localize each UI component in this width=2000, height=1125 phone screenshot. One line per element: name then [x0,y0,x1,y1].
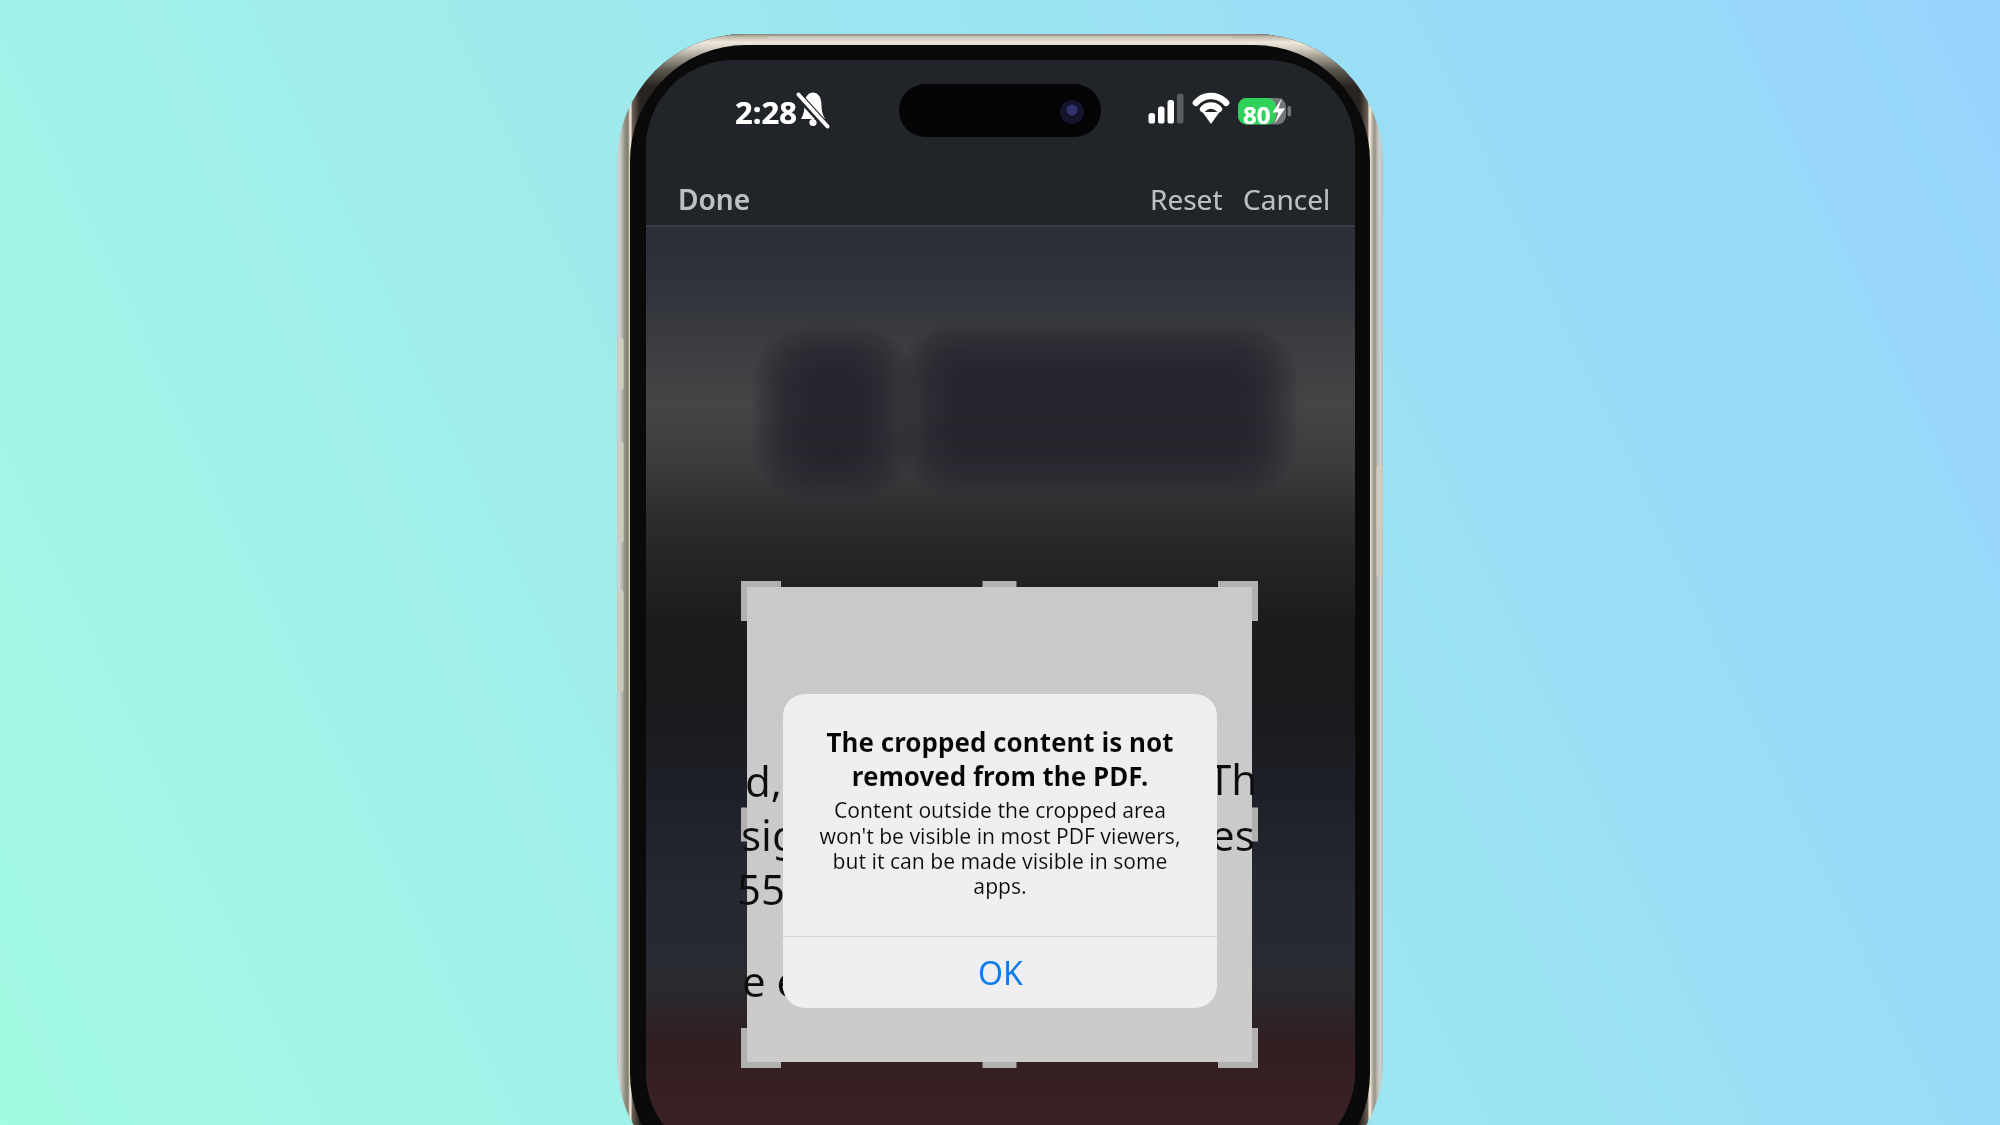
button[interactable]: OK [783,937,1217,1008]
staticText: The cropped content is not removed from … [783,724,1217,793]
staticText: Cancel [1243,180,1331,218]
staticText: d, [745,752,783,809]
staticText: sig [741,806,798,863]
button[interactable]: Reset [1140,172,1233,226]
staticText: 80 [1243,98,1271,131]
button[interactable]: Drag bottom right crop corner [1218,1028,1262,1072]
staticText: 55 [737,860,786,917]
button[interactable]: Drag top left crop corner [737,577,781,621]
staticText: e e [742,952,801,1009]
staticText: 2:28 [735,91,797,133]
staticText: OK [978,951,1023,995]
staticText: es [1211,806,1255,863]
button[interactable]: Cancel [1233,172,1341,226]
staticText: Done [678,180,751,218]
staticText: Content outside the cropped area won't b… [783,796,1217,900]
button[interactable]: Done [668,172,761,226]
staticText: Th [1208,750,1258,807]
button[interactable]: Drag top right crop corner [1218,577,1262,621]
staticText: Reset [1150,180,1223,218]
button[interactable]: Drag bottom left crop corner [737,1028,781,1072]
